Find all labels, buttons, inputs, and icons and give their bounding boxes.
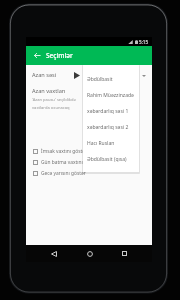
staticText: Əbdülbasit (qısa) xyxy=(87,156,127,163)
staticText: Azan səsi xyxy=(32,71,57,79)
staticText: vaxtlarda oxunacaq xyxy=(32,105,70,111)
button[interactable]: İmsak vaxtını göstər xyxy=(26,146,152,157)
button[interactable]: Recent apps xyxy=(116,245,133,262)
button[interactable]: Home xyxy=(81,245,98,262)
button[interactable]: Back xyxy=(33,46,42,65)
staticText: Gecə yarısını göstər xyxy=(41,170,86,177)
button[interactable]: xəbərdarlıq səsi 1 xyxy=(83,103,139,119)
button[interactable]: Gün batma vaxtını göstər xyxy=(26,157,152,168)
staticText: Gün batma vaxtını göstər xyxy=(41,159,99,166)
staticText: Rahim Müəzzinzadə xyxy=(87,92,134,99)
staticText: xəbərdarlıq səsi 1 xyxy=(87,108,129,115)
button[interactable]: Əbdülbasit xyxy=(83,71,139,87)
button[interactable]: Azan vaxtları xyxy=(26,87,152,111)
staticText: Seçimlər xyxy=(46,51,73,60)
button[interactable]: Əbdülbasit (qısa) xyxy=(83,151,139,167)
staticText: 5:15 xyxy=(139,39,149,45)
staticText: Hacı Ruslan xyxy=(87,140,115,147)
button[interactable]: Azan səsi xyxy=(26,69,152,81)
button[interactable]: Back xyxy=(45,245,62,262)
staticText: Azan vaxtları xyxy=(32,87,66,95)
button[interactable]: Hacı Ruslan xyxy=(83,135,139,151)
button[interactable]: xəbərdarlıq səsi 2 xyxy=(83,119,139,135)
staticText: 'Azan pausu' seçildikdə xyxy=(32,97,76,103)
staticText: xəbərdarlıq səsi 2 xyxy=(87,124,129,131)
button[interactable]: Rahim Müəzzinzadə xyxy=(83,87,139,103)
staticText: Əbdülbasit xyxy=(87,76,113,83)
staticText: İmsak vaxtını göstər xyxy=(41,148,88,155)
button[interactable]: Gecə yarısını göstər xyxy=(26,168,152,179)
